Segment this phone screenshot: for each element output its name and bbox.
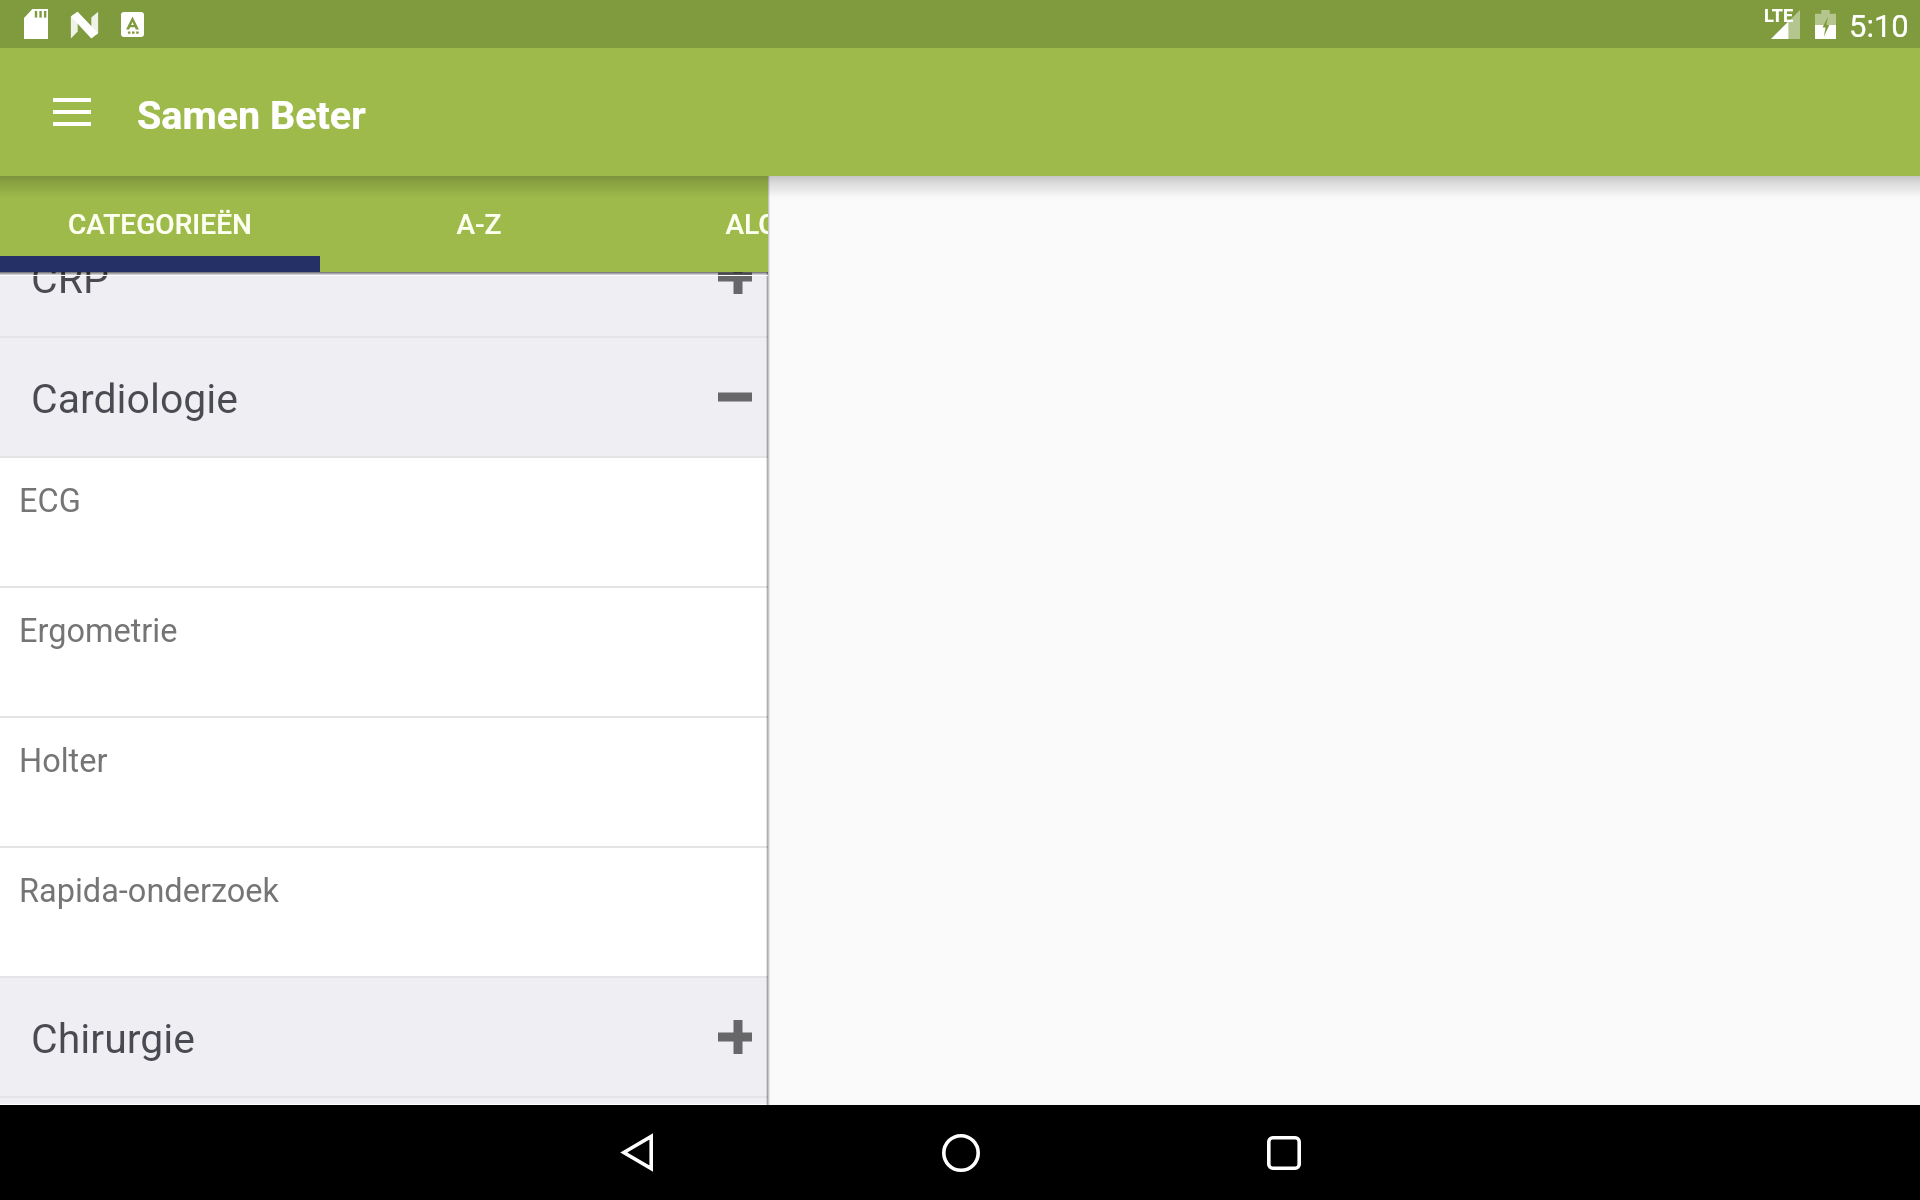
button[interactable]: ECG xyxy=(0,458,768,586)
staticText: ALGEMEEN xyxy=(725,208,768,241)
button[interactable]: Rapida-onderzoek xyxy=(0,848,768,976)
button[interactable]: ALGEMEEN xyxy=(638,176,768,272)
staticText: Rapida-onderzoek xyxy=(19,872,280,910)
staticText: ECG xyxy=(19,482,81,520)
staticText: A-Z xyxy=(456,208,502,241)
button[interactable]: CATEGORIEËN xyxy=(0,176,319,272)
button[interactable]: A-Z xyxy=(319,176,638,272)
staticText: 5:10 xyxy=(1849,8,1909,44)
button[interactable]: CRP xyxy=(0,218,768,336)
staticText: Ergometrie xyxy=(19,612,178,650)
button[interactable]: Recent apps xyxy=(1236,1105,1332,1200)
staticText: Cardiologie xyxy=(31,375,239,423)
button[interactable]: Chirurgie xyxy=(0,978,768,1096)
button[interactable]: Back xyxy=(589,1105,685,1200)
button[interactable]: Home xyxy=(913,1105,1009,1200)
button[interactable]: Ergometrie xyxy=(0,588,768,716)
button[interactable]: Open navigation drawer xyxy=(24,64,120,160)
staticText: Chirurgie xyxy=(31,1015,195,1063)
staticText: CATEGORIEËN xyxy=(68,208,252,241)
button[interactable]: Holter xyxy=(0,718,768,846)
staticText: Samen Beter xyxy=(137,92,366,138)
staticText: LTE xyxy=(1764,5,1794,26)
staticText: CRP xyxy=(31,255,109,303)
button[interactable]: Cardiologie xyxy=(0,338,768,456)
staticText: Holter xyxy=(19,742,108,780)
